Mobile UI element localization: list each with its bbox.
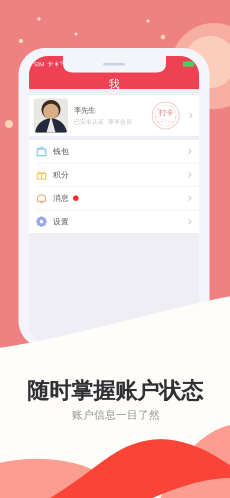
staticText: 我 (108, 77, 119, 91)
button[interactable]: 设置 (29, 210, 199, 233)
staticText: 随时掌握账户状态 (27, 377, 203, 405)
button[interactable]: 积分 (29, 163, 199, 186)
button[interactable]: 消息 (29, 187, 199, 210)
button[interactable]: 钱包 (29, 140, 199, 163)
staticText: 设置 (53, 217, 69, 226)
staticText: 积分 (53, 170, 69, 180)
staticText: 消息 (53, 193, 69, 203)
staticText: 李先生 (74, 106, 95, 115)
button[interactable]: 李先生 (29, 95, 199, 136)
staticText: 账户信息一目了然 (72, 408, 160, 422)
staticText: 钱包 (53, 146, 69, 156)
staticText: 打卡 (159, 108, 173, 118)
staticText: SIM 卡 (34, 60, 53, 68)
staticText: 已实名认证 尊享会员 (74, 118, 132, 125)
